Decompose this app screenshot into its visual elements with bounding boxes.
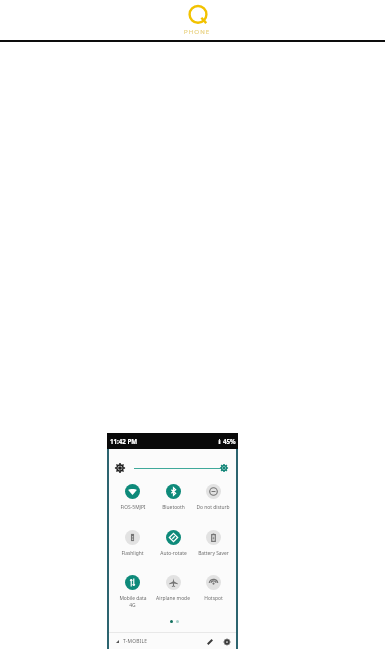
staticText: 4G [129, 602, 136, 609]
button[interactable]: Battery Saver [193, 530, 233, 557]
staticText: Battery Saver [198, 550, 229, 557]
staticText: T-MOBILE [123, 638, 148, 645]
button[interactable]: Bluetooth [153, 484, 193, 511]
staticText: Airplane mode [156, 595, 190, 602]
staticText: Auto-rotate [160, 550, 187, 557]
button[interactable]: Flashlight [112, 530, 153, 557]
button[interactable]: FiOS-5MJPI [112, 484, 153, 511]
staticText: FiOS-5MJPI [120, 504, 146, 511]
staticText: Flashlight [121, 550, 144, 557]
button[interactable]: Airplane mode [153, 575, 193, 602]
button[interactable]: Mobile data [112, 575, 153, 609]
button[interactable]: Do not disturb [193, 484, 233, 511]
button[interactable]: Settings [221, 636, 232, 647]
button[interactable]: Edit [204, 636, 215, 647]
button[interactable]: Hotspot [193, 575, 233, 602]
staticText: Do not disturb [196, 504, 230, 511]
staticText: 45% [223, 437, 236, 445]
staticText: Hotspot [204, 595, 223, 602]
staticText: Mobile data [119, 595, 147, 602]
staticText: 11:42 PM [110, 437, 138, 445]
button[interactable]: Auto-rotate [153, 530, 193, 557]
staticText: PHONE [184, 27, 211, 35]
staticText: Bluetooth [162, 504, 185, 511]
